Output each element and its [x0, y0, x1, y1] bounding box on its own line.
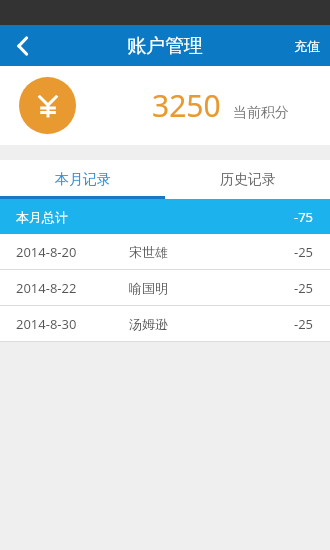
staticText: 2014-8-20	[16, 243, 77, 261]
button[interactable]: 2014-8-30	[0, 306, 330, 342]
button[interactable]: 2014-8-20	[0, 234, 330, 270]
staticText: -75	[294, 208, 314, 226]
staticText: -25	[294, 243, 314, 261]
staticText: 2014-8-30	[16, 315, 77, 333]
staticText: -25	[294, 279, 314, 297]
staticText: 账户管理	[127, 34, 203, 58]
button[interactable]: 本月记录	[0, 160, 165, 199]
staticText: 汤姆逊	[129, 316, 168, 332]
button[interactable]: 本月总计	[0, 199, 330, 234]
staticText: 本月记录	[55, 171, 111, 189]
staticText: 2014-8-22	[16, 279, 77, 297]
button[interactable]: 2014-8-22	[0, 270, 330, 306]
staticText: 宋世雄	[129, 244, 168, 260]
button[interactable]: Points balance	[19, 77, 76, 134]
staticText: -25	[294, 315, 314, 333]
button[interactable]: 历史记录	[165, 160, 330, 199]
staticText: 历史记录	[220, 171, 276, 189]
staticText: 本月总计	[16, 209, 68, 225]
button[interactable]: 充值	[284, 25, 330, 66]
staticText: 喻国明	[129, 280, 168, 296]
staticText: 充值	[294, 38, 320, 54]
staticText: 当前积分	[233, 104, 289, 122]
staticText: 3250	[152, 85, 221, 126]
button[interactable]: Back	[0, 25, 46, 66]
